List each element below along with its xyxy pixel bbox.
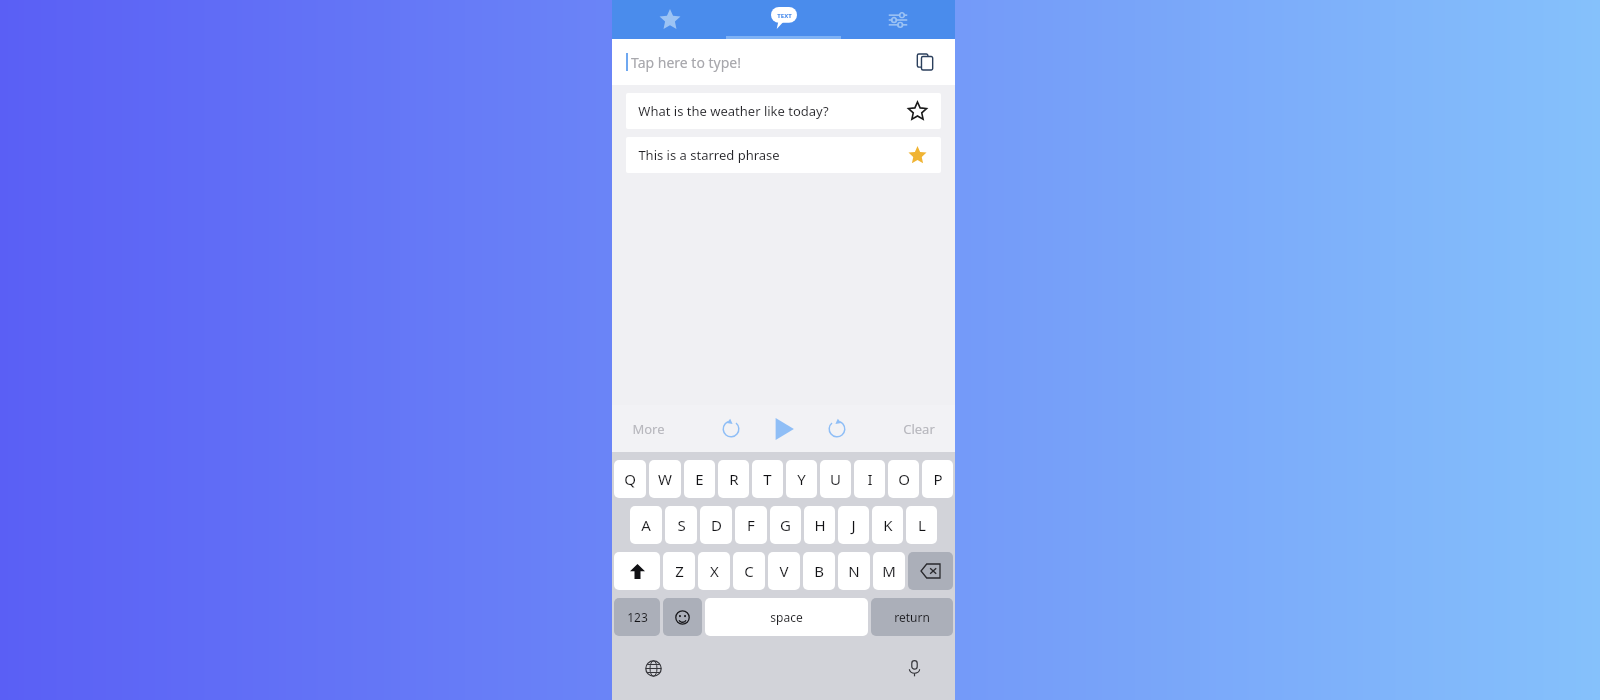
button[interactable]: D	[700, 506, 732, 544]
button[interactable]: What is the weather like today?	[626, 93, 941, 129]
button[interactable]: Unstar phrase	[903, 141, 931, 169]
staticText: Z	[675, 561, 684, 581]
staticText: T	[763, 469, 772, 489]
button[interactable]: C	[733, 552, 765, 590]
staticText: S	[677, 515, 686, 535]
staticText: X	[710, 561, 719, 581]
button[interactable]: T	[752, 460, 783, 498]
button[interactable]: Shift	[614, 552, 660, 590]
staticText: F	[747, 515, 755, 535]
button[interactable]: Backspace	[908, 552, 953, 590]
staticText: return	[894, 609, 930, 625]
staticText: N	[848, 561, 860, 581]
staticText: J	[851, 515, 856, 535]
staticText: D	[711, 515, 722, 535]
button[interactable]: Z	[663, 552, 695, 590]
button[interactable]: Redo	[820, 412, 854, 446]
button[interactable]: Text	[727, 0, 841, 39]
button[interactable]: W	[649, 460, 681, 498]
staticText: What is the weather like today?	[638, 102, 829, 120]
staticText: 123	[627, 609, 648, 625]
staticText: space	[770, 609, 803, 625]
staticText: I	[867, 469, 873, 489]
button[interactable]: space	[705, 598, 868, 636]
button[interactable]: Favorites	[612, 0, 727, 39]
button[interactable]: Change keyboard	[638, 653, 668, 683]
button[interactable]: X	[698, 552, 730, 590]
button[interactable]: 123	[614, 598, 660, 636]
button[interactable]: G	[770, 506, 801, 544]
button[interactable]: Copy	[909, 46, 941, 78]
button[interactable]: Tap here to type!	[612, 39, 955, 85]
button[interactable]: M	[873, 552, 905, 590]
staticText: B	[814, 561, 824, 581]
button[interactable]: This is a starred phrase	[626, 137, 941, 173]
button[interactable]: Undo	[714, 412, 748, 446]
staticText: R	[729, 469, 739, 489]
button[interactable]: I	[854, 460, 885, 498]
button[interactable]: Clear	[899, 416, 939, 442]
staticText: TEXT	[777, 12, 792, 20]
staticText: This is a starred phrase	[638, 146, 780, 164]
button[interactable]: V	[768, 552, 800, 590]
button[interactable]: L	[906, 506, 937, 544]
staticText: U	[830, 469, 841, 489]
button[interactable]: R	[718, 460, 749, 498]
button[interactable]: Q	[614, 460, 646, 498]
button[interactable]: H	[804, 506, 835, 544]
button[interactable]: B	[803, 552, 835, 590]
staticText: H	[814, 515, 826, 535]
button[interactable]: S	[665, 506, 697, 544]
button[interactable]: Settings	[841, 0, 955, 39]
staticText: G	[780, 515, 791, 535]
staticText: P	[933, 469, 943, 489]
staticText: L	[918, 515, 926, 535]
staticText: V	[779, 561, 789, 581]
staticText: A	[641, 515, 651, 535]
button[interactable]: Dictate	[899, 653, 929, 683]
staticText: Q	[624, 469, 636, 489]
button[interactable]: Star phrase	[903, 97, 931, 125]
button[interactable]: P	[922, 460, 953, 498]
staticText: Tap here to type!	[631, 53, 741, 72]
button[interactable]: return	[871, 598, 953, 636]
button[interactable]: U	[820, 460, 851, 498]
button[interactable]: Y	[786, 460, 817, 498]
button[interactable]: A	[630, 506, 662, 544]
staticText: K	[883, 515, 893, 535]
staticText: Clear	[903, 420, 935, 438]
button[interactable]: K	[872, 506, 903, 544]
button[interactable]: O	[888, 460, 919, 498]
button[interactable]: Emoji	[663, 598, 702, 636]
button[interactable]: E	[684, 460, 715, 498]
button[interactable]: N	[838, 552, 870, 590]
staticText: E	[695, 469, 704, 489]
button[interactable]: Play	[766, 411, 802, 447]
staticText: Y	[797, 469, 806, 489]
button[interactable]: F	[735, 506, 767, 544]
staticText: O	[898, 469, 910, 489]
staticText: W	[658, 469, 672, 489]
button[interactable]: More	[628, 416, 669, 442]
staticText: C	[744, 561, 754, 581]
button[interactable]: J	[838, 506, 869, 544]
staticText: More	[632, 420, 665, 438]
staticText: M	[882, 561, 896, 581]
